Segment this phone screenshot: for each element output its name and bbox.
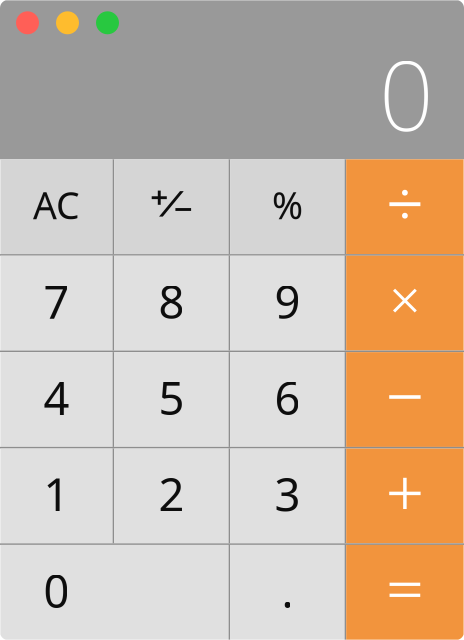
button[interactable]: Subtract [346,352,464,447]
button[interactable]: 4 [0,352,113,447]
staticText: 1 [43,464,69,524]
button[interactable]: Add [346,448,464,543]
staticText: . [281,560,293,620]
button[interactable]: Toggle sign [114,159,229,254]
button[interactable]: Minimize [56,11,79,34]
button[interactable]: % [230,159,345,254]
button[interactable]: 7 [0,256,113,350]
button[interactable]: 1 [0,448,113,543]
button[interactable]: 2 [114,448,229,543]
button[interactable]: Equals [346,545,464,640]
staticText: 9 [274,271,300,331]
button[interactable]: 0 [0,545,229,640]
staticText: % [272,180,303,229]
staticText: 0 [43,560,69,620]
staticText: 7 [43,271,69,331]
button[interactable]: Zoom [96,11,119,34]
button[interactable]: Divide [346,159,464,254]
staticText: 0 [379,30,434,157]
staticText: 8 [158,271,184,331]
button[interactable]: 3 [230,448,345,543]
button[interactable]: 9 [230,256,345,350]
button[interactable]: 6 [230,352,345,447]
button[interactable]: 8 [114,256,229,350]
staticText: 3 [274,464,300,524]
button[interactable]: Close [16,11,39,34]
button[interactable]: Multiply [346,256,464,350]
button[interactable]: AC [0,159,113,254]
button[interactable]: 5 [114,352,229,447]
staticText: AC [33,180,80,229]
staticText: 4 [43,367,69,428]
staticText: 6 [274,367,300,428]
button[interactable]: . [230,545,345,640]
staticText: 5 [158,367,184,428]
staticText: 2 [158,464,184,524]
